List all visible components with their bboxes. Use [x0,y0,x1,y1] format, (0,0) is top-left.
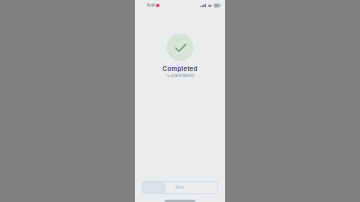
button[interactable]: Close [142,182,217,193]
staticText: 10:49 [147,4,155,7]
staticText: Close [175,186,184,189]
staticText: Completed [162,65,197,72]
staticText: 1 x ADANTRANS [166,73,194,78]
